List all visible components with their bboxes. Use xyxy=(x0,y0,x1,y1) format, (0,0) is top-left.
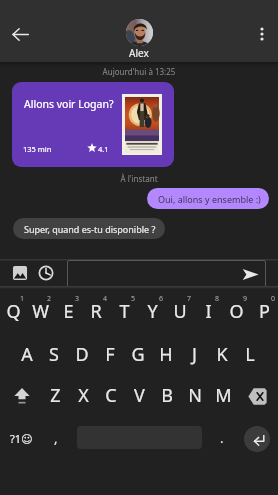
staticText: Q xyxy=(6,299,21,324)
staticText: Super, quand es-tu disponible ? xyxy=(24,223,156,235)
staticText: F xyxy=(105,342,115,367)
button[interactable]: W xyxy=(27,291,54,333)
button[interactable]: S xyxy=(40,334,68,376)
staticText: K xyxy=(216,342,228,367)
staticText: X xyxy=(78,383,89,408)
button[interactable]: M xyxy=(209,375,237,417)
button[interactable]: ?1☺ xyxy=(6,417,36,459)
button[interactable]: C xyxy=(97,375,125,417)
staticText: M xyxy=(215,383,232,408)
staticText: 6 xyxy=(159,294,164,304)
staticText: B xyxy=(161,383,173,408)
staticText: H xyxy=(159,342,173,367)
staticText: 2 xyxy=(47,294,52,304)
staticText: 3 xyxy=(75,294,80,304)
staticText: Aujourd'hui à 13:25 xyxy=(0,66,278,77)
staticText: Z xyxy=(50,383,61,408)
staticText: D xyxy=(75,342,89,367)
staticText: . xyxy=(220,429,224,447)
staticText: Allons voir Logan? xyxy=(24,97,114,111)
button[interactable]: I xyxy=(194,291,222,333)
button[interactable]: O xyxy=(222,291,250,333)
staticText: ?1☺ xyxy=(10,431,33,446)
button[interactable]: Q xyxy=(0,291,27,333)
button[interactable]: Allons voir Logan? xyxy=(12,82,174,167)
button[interactable]: Super, quand es-tu disponible ? xyxy=(13,218,165,239)
button[interactable]: D xyxy=(68,334,96,376)
staticText: T xyxy=(119,299,130,324)
button[interactable]: L xyxy=(236,334,264,376)
button[interactable]: Recent xyxy=(33,260,59,286)
staticText: I xyxy=(205,299,212,324)
staticText: , xyxy=(54,429,58,447)
staticText: E xyxy=(63,299,74,324)
staticText: Alex xyxy=(129,46,149,60)
button[interactable]: Send xyxy=(239,263,261,285)
staticText: N xyxy=(188,383,202,408)
staticText: Oui, allons y ensemble :) xyxy=(158,193,261,205)
staticText: O xyxy=(229,299,244,324)
button[interactable]: Enter xyxy=(244,426,270,452)
button[interactable]: H xyxy=(152,334,180,376)
staticText: Y xyxy=(147,299,158,324)
button[interactable]: B xyxy=(153,375,181,417)
staticText: P xyxy=(259,299,270,324)
staticText: 7 xyxy=(187,294,192,304)
staticText: L xyxy=(245,342,255,367)
button[interactable]: T xyxy=(110,291,138,333)
button[interactable]: P xyxy=(250,291,278,333)
staticText: 8 xyxy=(215,294,220,304)
staticText: S xyxy=(49,342,59,367)
staticText: 5 xyxy=(131,294,136,304)
button[interactable]: . xyxy=(210,417,234,459)
button[interactable]: Back xyxy=(4,18,36,50)
staticText: 4.1 xyxy=(98,144,109,154)
button[interactable]: V xyxy=(125,375,153,417)
button[interactable]: Backspace xyxy=(239,375,275,417)
staticText: W xyxy=(32,299,49,324)
staticText: 4 xyxy=(103,294,108,304)
button[interactable]: Insert image xyxy=(7,260,33,286)
button[interactable]: Oui, allons y ensemble :) xyxy=(147,188,269,209)
button[interactable]: Z xyxy=(42,375,69,417)
staticText: 135 min xyxy=(23,144,52,154)
staticText: 9 xyxy=(243,294,248,304)
button[interactable]: R xyxy=(82,291,110,333)
staticText: À l'instant xyxy=(0,173,278,184)
staticText: 0 xyxy=(271,294,276,304)
button[interactable]: Send xyxy=(67,260,266,288)
button[interactable]: More options xyxy=(246,18,278,50)
staticText: A xyxy=(21,342,33,367)
button[interactable]: Alex xyxy=(113,19,165,60)
button[interactable]: F xyxy=(96,334,124,376)
staticText: 1 xyxy=(20,294,25,304)
button[interactable]: U xyxy=(166,291,194,333)
staticText: J xyxy=(192,342,197,367)
staticText: U xyxy=(173,299,187,324)
button[interactable]: Y xyxy=(138,291,166,333)
button[interactable]: J xyxy=(180,334,208,376)
button[interactable]: A xyxy=(13,334,40,376)
button[interactable]: K xyxy=(208,334,236,376)
staticText: R xyxy=(90,299,102,324)
staticText: C xyxy=(105,383,117,408)
staticText: V xyxy=(134,383,145,408)
button[interactable]: N xyxy=(181,375,209,417)
button[interactable]: E xyxy=(54,291,82,333)
button[interactable]: Shift xyxy=(4,375,40,417)
button[interactable]: G xyxy=(124,334,152,376)
staticText: G xyxy=(131,342,145,367)
button[interactable]: X xyxy=(69,375,97,417)
button[interactable]: , xyxy=(44,417,68,459)
